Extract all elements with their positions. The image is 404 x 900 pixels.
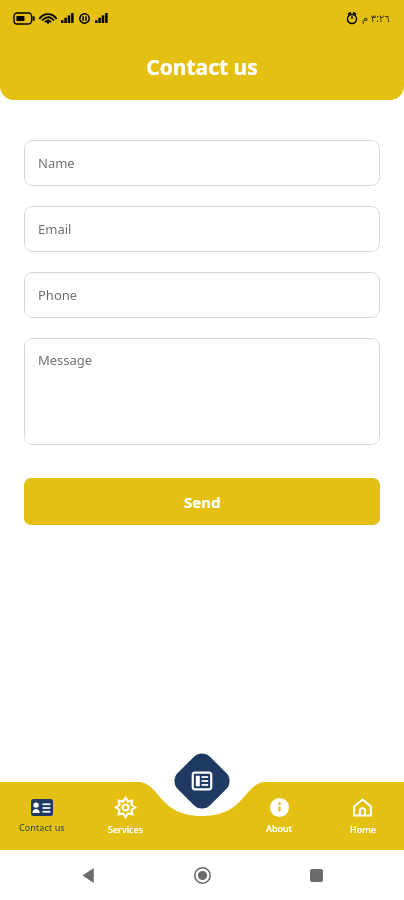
staticText: Services bbox=[108, 823, 144, 835]
staticText: Email bbox=[38, 220, 72, 238]
button[interactable]: Services bbox=[84, 797, 167, 835]
button[interactable]: Home bbox=[321, 797, 404, 835]
button[interactable]: Email bbox=[24, 206, 380, 252]
staticText: Send bbox=[184, 492, 221, 512]
button[interactable]: Send bbox=[24, 478, 380, 525]
button[interactable]: Recent apps bbox=[296, 855, 336, 895]
staticText: Phone bbox=[38, 286, 78, 304]
button[interactable]: Back bbox=[68, 855, 108, 895]
button[interactable]: Contact us bbox=[0, 799, 84, 833]
button[interactable]: Home bbox=[182, 855, 222, 895]
staticText: ٣:٢٦ م bbox=[362, 11, 390, 25]
button[interactable]: Message bbox=[24, 338, 380, 445]
button[interactable]: Menu bbox=[171, 750, 233, 812]
button[interactable]: About bbox=[238, 798, 321, 834]
button[interactable]: Phone bbox=[24, 272, 380, 318]
staticText: Home bbox=[350, 823, 376, 835]
staticText: About bbox=[266, 822, 293, 834]
staticText: Contact us bbox=[146, 53, 258, 82]
staticText: Message bbox=[38, 351, 93, 369]
staticText: Name bbox=[38, 154, 75, 172]
button[interactable]: Name bbox=[24, 140, 380, 186]
staticText: Contact us bbox=[19, 821, 65, 833]
